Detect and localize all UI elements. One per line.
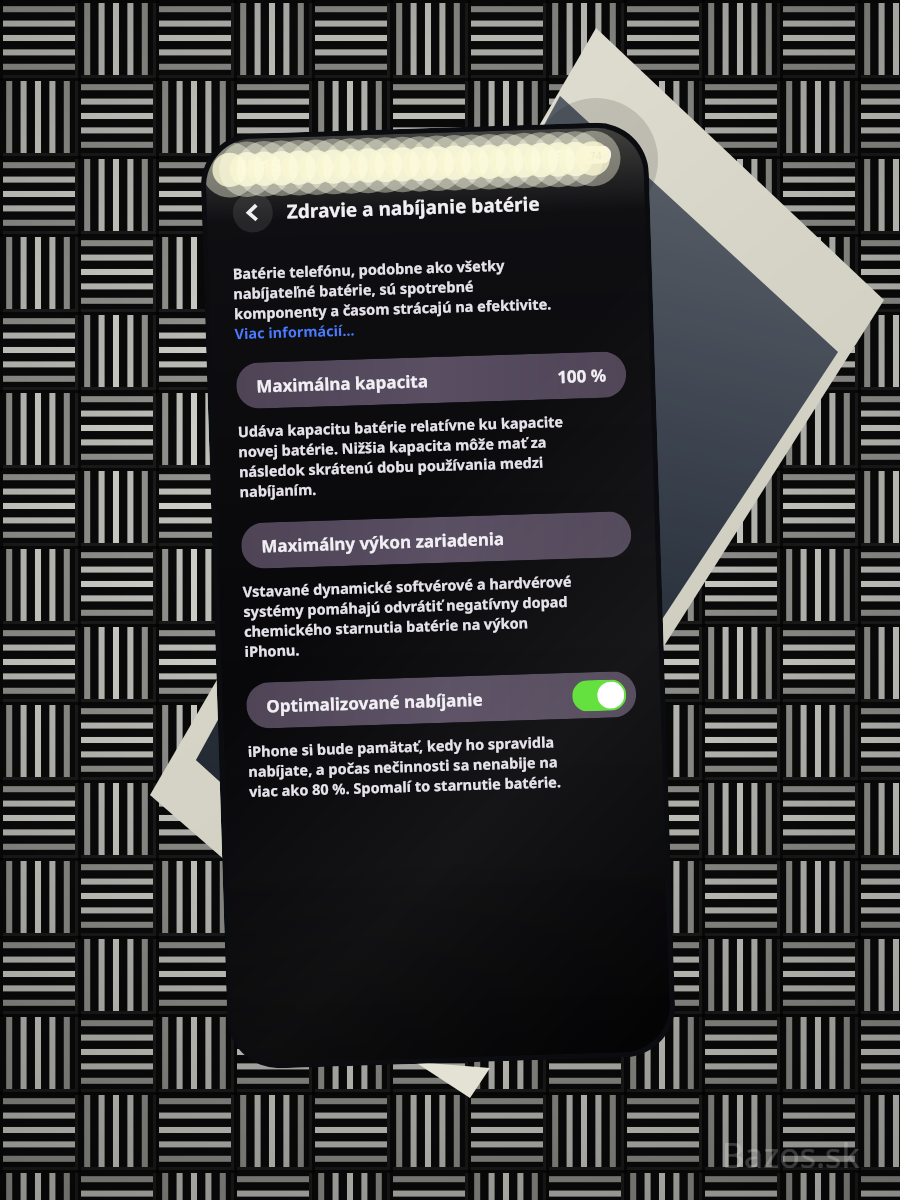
staticText: 74 [589,148,602,163]
staticText: 100 % [557,364,606,388]
staticText: Maximálny výkon zariadenia [261,527,505,557]
button[interactable]: Back [232,192,273,233]
staticText: Viac informácií... [234,319,355,343]
button[interactable]: Maximálny výkon zariadenia [241,511,632,569]
button[interactable]: Viac informácií... [234,319,355,343]
staticText: Zdravie a nabíjanie batérie [286,191,540,224]
staticText: Batérie telefónu, podobne ako všetky nab… [232,253,552,323]
staticText: iPhone si bude pamätať, kedy ho spravidl… [247,731,561,801]
staticText: 18:15 [237,154,282,178]
staticText: Vstavané dynamické softvérové a hardvéro… [242,571,574,661]
button[interactable]: Optimalizované nabíjanie [246,671,637,729]
staticText: Optimalizované nabíjanie [266,688,484,717]
button[interactable]: Maximálna kapacita [236,351,627,409]
staticText: Maximálna kapacita [256,369,429,398]
button[interactable]: Optimalizované nabíjanie toggle, on [572,679,627,712]
staticText: Udáva kapacitu batérie relatívne ku kapa… [237,411,566,501]
staticText: Bazos.sk [722,1132,860,1178]
